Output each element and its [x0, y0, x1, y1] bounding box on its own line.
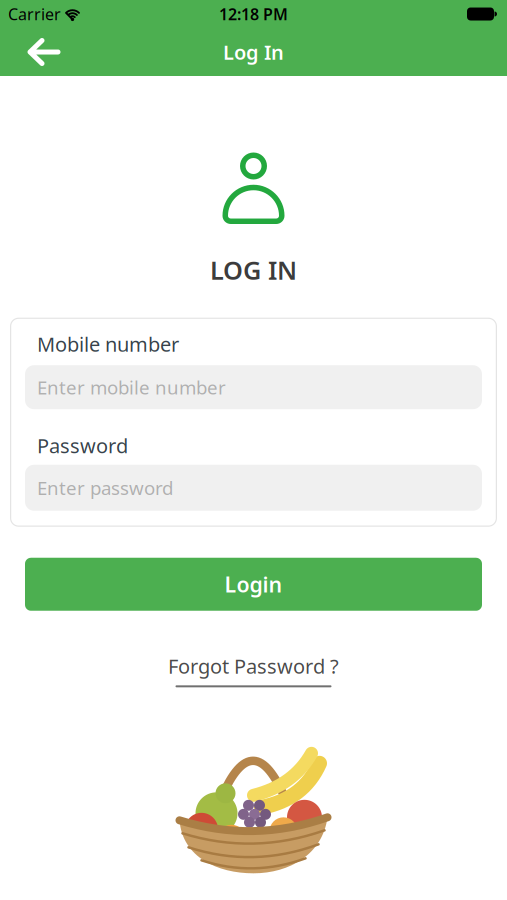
staticText: Log In [223, 39, 284, 65]
staticText: Enter password [37, 475, 173, 500]
button[interactable]: Enter password [25, 465, 482, 511]
button[interactable]: Forgot Password ? [168, 653, 339, 687]
staticText: Password [37, 432, 128, 459]
staticText: Mobile number [37, 331, 179, 357]
staticText: Login [224, 570, 282, 598]
button[interactable]: Enter mobile number [25, 365, 482, 409]
button[interactable]: Login [25, 558, 482, 611]
staticText: Enter mobile number [37, 375, 226, 400]
staticText: Carrier [8, 3, 61, 25]
button[interactable]: Back [0, 28, 61, 76]
staticText: LOG IN [210, 253, 297, 287]
staticText: Forgot Password ? [168, 653, 339, 679]
staticText: 12:18 PM [219, 3, 288, 25]
